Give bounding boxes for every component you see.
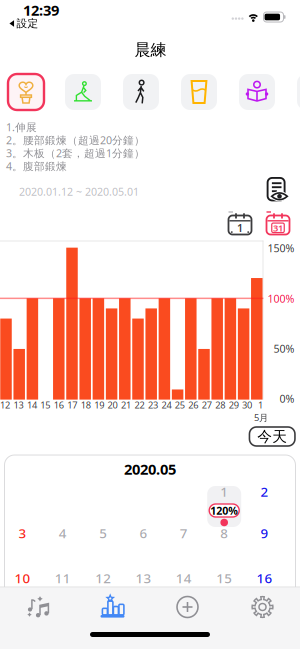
staticText: 20 bbox=[108, 399, 118, 411]
button[interactable]: 瑜伽 bbox=[65, 74, 101, 110]
button[interactable]: 16 bbox=[245, 558, 283, 598]
button[interactable]: 伸展 bbox=[8, 74, 44, 110]
button[interactable]: 8 bbox=[205, 513, 243, 553]
staticText: 1 bbox=[258, 399, 263, 411]
staticText: 14 bbox=[27, 399, 37, 411]
staticText: 2020.01.12 ~ 2020.05.01 bbox=[19, 184, 139, 199]
staticText: 設定 bbox=[16, 17, 38, 30]
staticText: 120% bbox=[210, 503, 238, 518]
staticText: 16 bbox=[256, 569, 272, 587]
button[interactable]: 13 bbox=[124, 558, 162, 598]
staticText: 50% bbox=[273, 341, 294, 356]
button[interactable]: 月檢視 bbox=[266, 212, 290, 236]
staticText: 13 bbox=[13, 399, 23, 411]
staticText: 8 bbox=[220, 524, 228, 542]
staticText: 1.伸展 bbox=[6, 120, 37, 134]
staticText: 23 bbox=[148, 399, 158, 411]
staticText: 11 bbox=[55, 569, 71, 587]
staticText: 2020.05 bbox=[124, 459, 176, 479]
staticText: 18 bbox=[81, 399, 91, 411]
staticText: 晨練 bbox=[134, 40, 166, 60]
button[interactable]: 設定 bbox=[9, 17, 38, 30]
staticText: 12 bbox=[95, 569, 111, 587]
button[interactable]: 15 bbox=[205, 558, 243, 598]
button[interactable]: 閱讀 bbox=[239, 74, 275, 110]
button[interactable]: 7 bbox=[165, 513, 203, 553]
button[interactable]: 12 bbox=[84, 558, 122, 598]
staticText: 15 bbox=[40, 399, 50, 411]
staticText: 21 bbox=[121, 399, 131, 411]
button[interactable]: 9 bbox=[245, 513, 283, 553]
staticText: 150% bbox=[267, 241, 294, 255]
staticText: 24 bbox=[161, 399, 171, 411]
button[interactable]: 檢視清單 bbox=[266, 177, 288, 202]
staticText: 100% bbox=[267, 291, 294, 306]
staticText: 30 bbox=[242, 399, 252, 411]
button[interactable]: 設定 bbox=[250, 595, 274, 619]
button[interactable]: 更多 bbox=[297, 74, 300, 110]
button[interactable]: 步行 bbox=[123, 74, 159, 110]
staticText: 1 bbox=[237, 221, 243, 235]
button[interactable]: 4 bbox=[44, 513, 82, 553]
staticText: 12:39 bbox=[23, 0, 59, 20]
button[interactable]: 10 bbox=[3, 558, 41, 598]
button[interactable]: 音樂 bbox=[24, 595, 50, 619]
staticText: 25 bbox=[175, 399, 185, 411]
button[interactable]: 日檢視 bbox=[228, 212, 252, 236]
staticText: 4。腹部鍛煉 bbox=[6, 159, 67, 173]
staticText: 29 bbox=[229, 399, 239, 411]
staticText: 28 bbox=[215, 399, 225, 411]
staticText: 27 bbox=[202, 399, 212, 411]
staticText: 31 bbox=[273, 222, 283, 234]
button[interactable]: 1 bbox=[207, 486, 241, 527]
button[interactable]: 3 bbox=[3, 513, 41, 553]
staticText: 14 bbox=[176, 569, 192, 587]
staticText: 3 bbox=[18, 524, 26, 542]
button[interactable]: 14 bbox=[165, 558, 203, 598]
button[interactable]: 新增 bbox=[175, 595, 199, 619]
staticText: 2 bbox=[260, 483, 268, 500]
staticText: 1 bbox=[220, 483, 228, 500]
staticText: 6 bbox=[139, 524, 147, 542]
staticText: 10 bbox=[14, 569, 30, 587]
button[interactable]: 2 bbox=[245, 471, 283, 511]
button[interactable]: 喝水 bbox=[181, 74, 217, 110]
staticText: 0% bbox=[279, 391, 294, 406]
staticText: 16 bbox=[54, 399, 64, 411]
staticText: 5月 bbox=[254, 411, 268, 424]
staticText: 2。腰部鍛煉（超過20分鐘） bbox=[6, 133, 145, 147]
staticText: 5 bbox=[99, 524, 107, 542]
button[interactable]: 11 bbox=[44, 558, 82, 598]
staticText: 15 bbox=[216, 569, 232, 587]
staticText: 7 bbox=[180, 524, 188, 542]
button[interactable]: 今天 bbox=[249, 427, 295, 446]
staticText: 13 bbox=[135, 569, 151, 587]
staticText: 3。木板（2套，超過1分鐘） bbox=[6, 146, 145, 160]
staticText: 17 bbox=[67, 399, 77, 411]
button[interactable]: 6 bbox=[124, 513, 162, 553]
staticText: 9 bbox=[260, 524, 268, 542]
staticText: 22 bbox=[134, 399, 144, 411]
staticText: 今天 bbox=[257, 427, 287, 445]
staticText: 4 bbox=[59, 524, 67, 542]
button[interactable]: 統計 bbox=[99, 595, 125, 619]
staticText: 26 bbox=[188, 399, 198, 411]
staticText: 12 bbox=[0, 399, 10, 411]
button[interactable]: 5 bbox=[84, 513, 122, 553]
staticText: 19 bbox=[94, 399, 104, 411]
